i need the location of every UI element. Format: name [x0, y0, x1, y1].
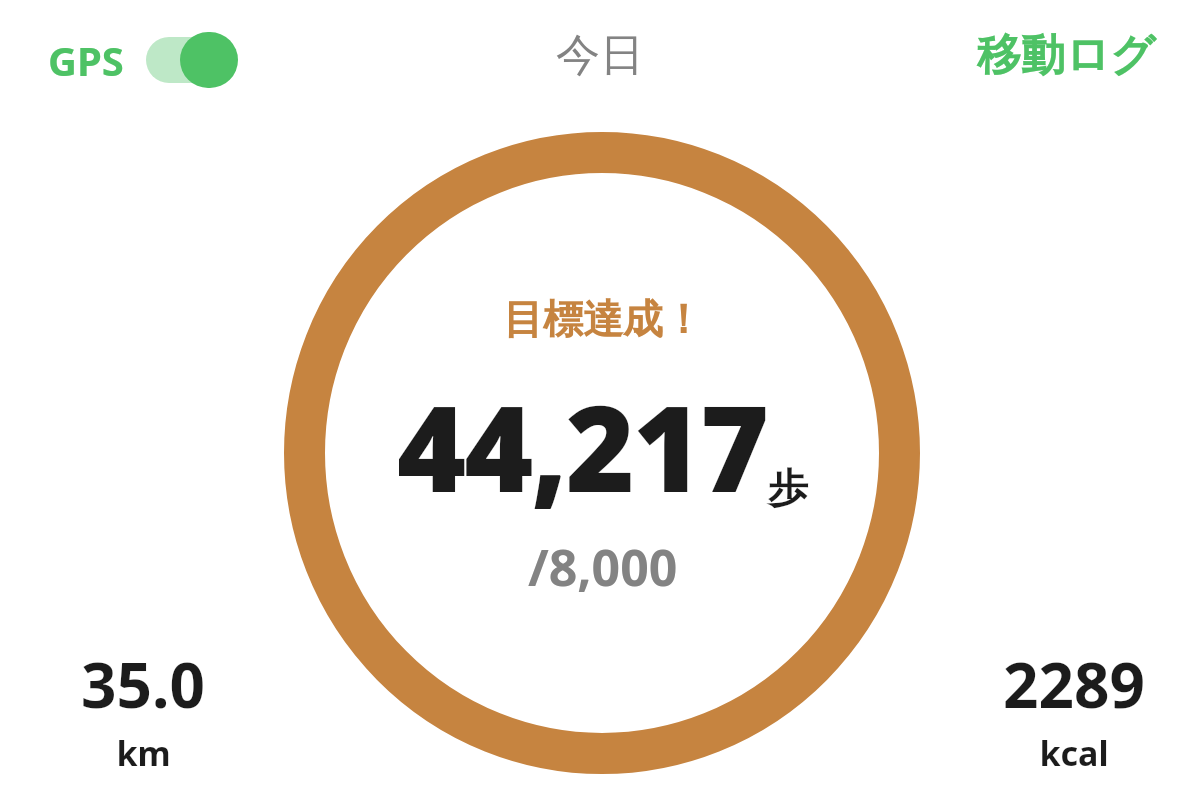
staticText: 目標達成！ [503, 294, 703, 344]
staticText: 今日 [556, 28, 644, 83]
staticText: GPS [48, 33, 124, 87]
staticText: 移動ログ [977, 28, 1156, 83]
other: GPS toggle, on [146, 32, 238, 88]
button[interactable]: Step goal progress ring [284, 132, 920, 774]
staticText: kcal [1039, 730, 1109, 776]
staticText: 44,217 [397, 366, 768, 527]
staticText: km [116, 730, 171, 776]
staticText: 歩 [768, 463, 808, 513]
staticText: /8,000 [528, 533, 678, 601]
button[interactable]: 移動ログ [971, 24, 1162, 87]
staticText: 35.0 [81, 642, 205, 726]
button[interactable]: GPS [44, 28, 242, 92]
button[interactable]: 2289 [984, 640, 1164, 778]
button[interactable]: 35.0 [58, 640, 228, 778]
staticText: 2289 [1003, 642, 1145, 726]
